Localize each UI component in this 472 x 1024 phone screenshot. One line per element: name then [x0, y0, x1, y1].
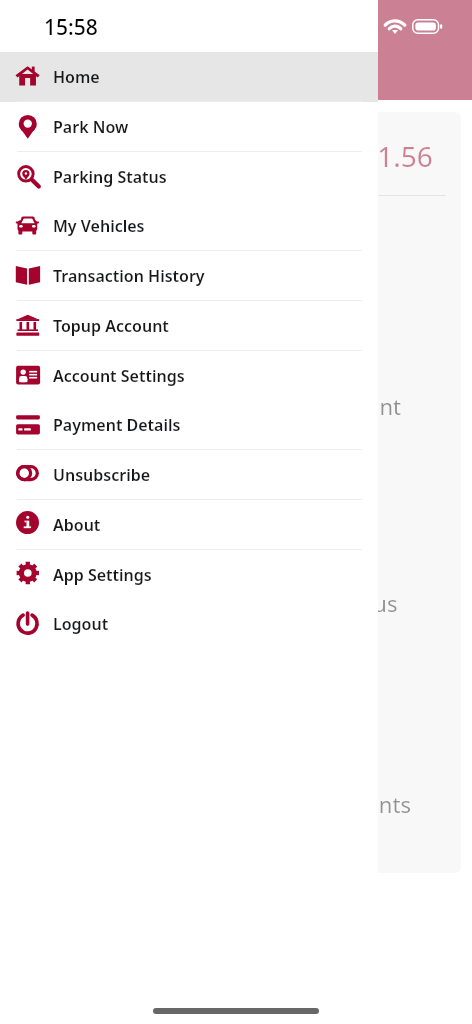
button[interactable]: Payment Details [0, 400, 378, 450]
button[interactable]: Unsubscribe [0, 450, 378, 500]
staticText: Logout [53, 613, 109, 635]
staticText: About [53, 514, 101, 536]
button[interactable]: Transaction History [0, 251, 378, 301]
staticText: 15:58 [44, 13, 98, 42]
staticText: Transaction History [53, 265, 205, 287]
staticText: App Settings [53, 564, 152, 586]
staticText: My Vehicles [53, 215, 145, 237]
button[interactable]: Parking Status [42, 429, 432, 614]
button[interactable]: Park Now [0, 102, 378, 152]
staticText: Parking Status [248, 588, 398, 618]
staticText: Parking Status [53, 166, 167, 188]
staticText: Unsubscribe [53, 464, 151, 486]
button[interactable]: Close navigation drawer [0, 0, 472, 1024]
staticText: Topup Account [247, 391, 402, 421]
button[interactable]: Payments [42, 629, 432, 814]
button[interactable]: Topup Account [0, 301, 378, 351]
button[interactable]: Logout [0, 599, 378, 649]
button[interactable]: App Settings [0, 550, 378, 600]
staticText: Payment Details [53, 414, 181, 436]
staticText: Park Now [53, 116, 129, 138]
staticText: Account Settings [53, 365, 185, 387]
button[interactable]: My Vehicles [0, 201, 378, 251]
staticText: Topup Account [53, 315, 169, 337]
button[interactable]: Home [0, 52, 378, 102]
button[interactable]: Parking Status [0, 152, 378, 202]
button[interactable]: Topup Account [42, 232, 432, 417]
button[interactable]: Account Settings [0, 351, 378, 401]
staticText: Balance: £1.56 [243, 137, 433, 175]
staticText: Payments [309, 789, 411, 819]
staticText: Home [53, 66, 100, 88]
button[interactable]: About [0, 500, 378, 550]
